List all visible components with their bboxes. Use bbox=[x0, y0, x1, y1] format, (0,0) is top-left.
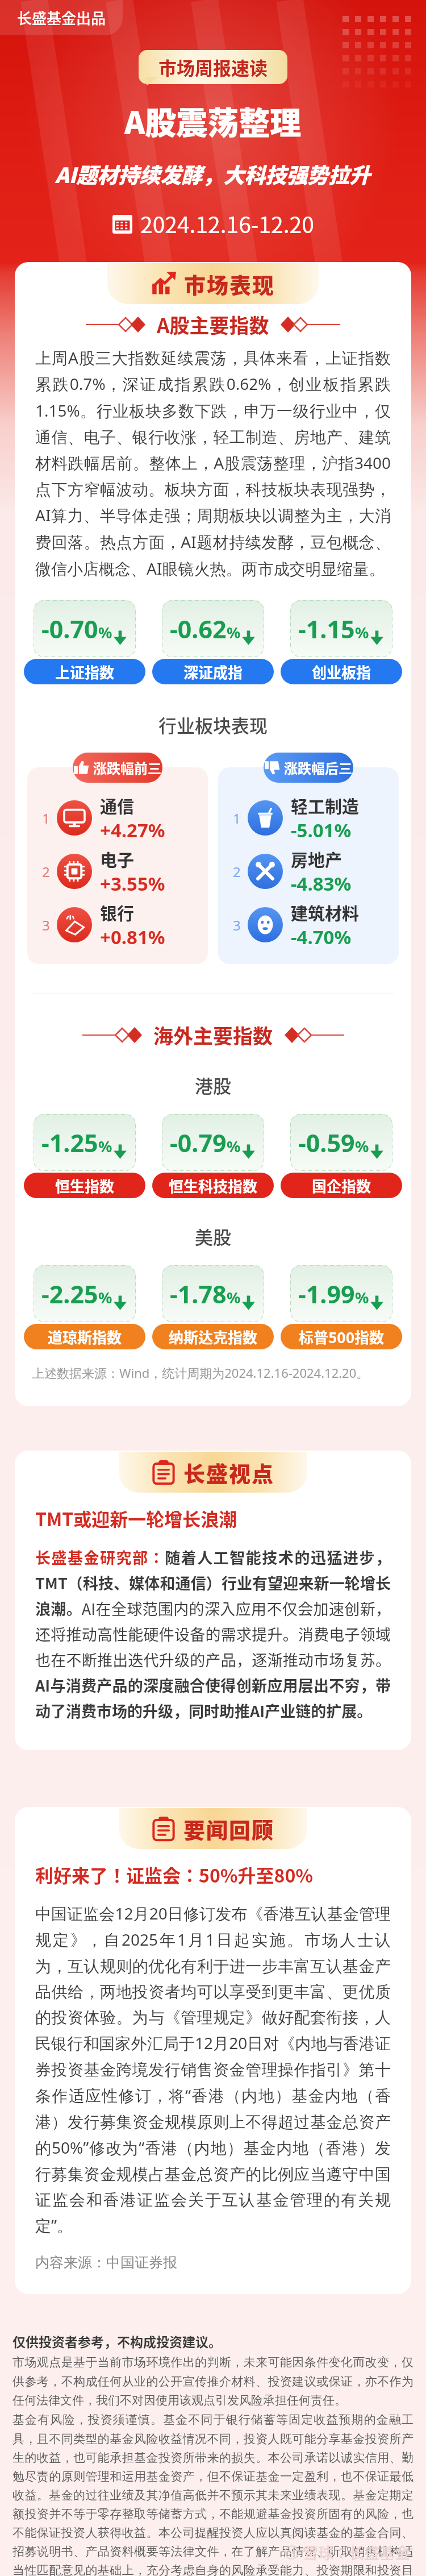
staticText: -1.99 bbox=[298, 1277, 355, 1311]
staticText: 国企指数 bbox=[312, 1175, 371, 1196]
staticText: -1.25 bbox=[41, 1126, 98, 1160]
staticText: -0.59 bbox=[298, 1126, 355, 1160]
staticText: +3.55% bbox=[100, 871, 165, 896]
staticText: 电子 bbox=[100, 846, 134, 871]
button[interactable]: -1.15 bbox=[281, 600, 402, 684]
staticText: +4.27% bbox=[100, 817, 165, 843]
button[interactable]: -0.70 bbox=[24, 600, 145, 684]
staticText: 港股 bbox=[195, 1072, 232, 1098]
staticText: 仅供投资者参考，不构成投资建议。 bbox=[12, 2332, 222, 2350]
staticText: 上证指数 bbox=[55, 661, 115, 683]
staticText: % bbox=[98, 1287, 112, 1308]
staticText: 基金有风险，投资须谨慎。基金不同于银行储蓄等固定收益预期的金融工具，且不同类型的… bbox=[12, 2412, 414, 2576]
staticText: 长盛基金研究部：随着人工智能技术的迅猛进步，TMT（科技、媒体和通信）行业有望迎… bbox=[35, 1546, 391, 1722]
button[interactable]: 涨跌幅前三 bbox=[73, 753, 162, 783]
staticText: 长盛视点 bbox=[183, 1457, 275, 1488]
staticText: % bbox=[227, 1136, 241, 1157]
staticText: A股震荡整理 bbox=[124, 98, 302, 143]
staticText: -1.15 bbox=[298, 612, 355, 646]
staticText: 行业板块表现 bbox=[158, 712, 268, 738]
staticText: -0.79 bbox=[170, 1126, 227, 1160]
button[interactable]: -1.25 bbox=[24, 1114, 145, 1198]
staticText: 海外主要指数 bbox=[153, 1020, 273, 1049]
staticText: 中国证监会12月20日修订发布《香港互认基金管理规定》，自2025年1月1日起实… bbox=[35, 1902, 391, 2237]
staticText: -0.62 bbox=[170, 612, 227, 646]
button[interactable]: 长盛基金出品 bbox=[0, 0, 123, 35]
staticText: % bbox=[98, 622, 112, 643]
staticText: 上周A股三大指数延续震荡，具体来看，上证指数累跌0.7%，深证成指累跌0.62%… bbox=[35, 347, 391, 580]
staticText: 深证成指 bbox=[183, 661, 243, 683]
staticText: -4.83% bbox=[291, 871, 352, 896]
button[interactable]: -1.78 bbox=[152, 1265, 274, 1349]
button[interactable]: -0.59 bbox=[281, 1114, 402, 1198]
staticText: 3 bbox=[233, 916, 241, 934]
staticText: +0.81% bbox=[100, 924, 165, 950]
staticText: 纳斯达克指数 bbox=[169, 1326, 258, 1348]
staticText: 建筑材料 bbox=[291, 900, 359, 924]
button[interactable]: 雪球 长盛基金 bbox=[285, 2541, 410, 2563]
button[interactable]: 长盛视点 bbox=[119, 1452, 307, 1493]
staticText: -4.70% bbox=[291, 924, 352, 950]
staticText: TMT或迎新一轮增长浪潮 bbox=[35, 1505, 237, 1531]
staticText: 市场表现 bbox=[184, 268, 275, 300]
button[interactable]: 市场表现 bbox=[107, 263, 319, 304]
staticText: 市场周报速读 bbox=[158, 54, 268, 80]
staticText: -2.25 bbox=[41, 1277, 98, 1311]
button[interactable]: -0.62 bbox=[152, 600, 274, 684]
button[interactable]: 要闻回顾 bbox=[119, 1808, 307, 1849]
staticText: 1 bbox=[42, 809, 50, 828]
staticText: 1 bbox=[233, 809, 241, 828]
button[interactable]: -2.25 bbox=[24, 1265, 145, 1349]
staticText: 道琼斯指数 bbox=[48, 1326, 122, 1348]
staticText: 长盛基金出品 bbox=[17, 7, 106, 28]
staticText: % bbox=[355, 1136, 369, 1157]
staticText: 雪球：长盛基金 bbox=[303, 2541, 410, 2563]
button[interactable]: -1.99 bbox=[281, 1265, 402, 1349]
staticText: 恒生科技指数 bbox=[169, 1175, 258, 1196]
staticText: 利好来了！证监会：50%升至80% bbox=[35, 1862, 314, 1888]
staticText: 要闻回顾 bbox=[183, 1813, 275, 1844]
staticText: 轻工制造 bbox=[291, 793, 359, 817]
staticText: 房地产 bbox=[291, 846, 342, 871]
staticText: 标普500指数 bbox=[299, 1326, 385, 1348]
staticText: 2024.12.16-12.20 bbox=[140, 207, 314, 239]
staticText: -0.70 bbox=[41, 612, 98, 646]
staticText: AI题材持续发酵，大科技强势拉升 bbox=[55, 159, 371, 189]
staticText: 2 bbox=[42, 862, 50, 881]
staticText: A股主要指数 bbox=[157, 310, 269, 339]
button[interactable]: 涨跌幅后三 bbox=[264, 753, 353, 783]
staticText: % bbox=[355, 622, 369, 643]
staticText: 创业板指 bbox=[312, 661, 371, 683]
staticText: -1.78 bbox=[170, 1277, 227, 1311]
staticText: 内容来源：中国证券报 bbox=[35, 2254, 177, 2271]
staticText: 上述数据来源：Wind，统计周期为2024.12.16-2024.12.20。 bbox=[32, 1364, 369, 1381]
staticText: % bbox=[227, 1287, 241, 1308]
staticText: % bbox=[227, 622, 241, 643]
staticText: 恒生指数 bbox=[55, 1175, 115, 1196]
staticText: 银行 bbox=[100, 900, 134, 924]
staticText: 涨跌幅前三 bbox=[93, 758, 161, 778]
staticText: 3 bbox=[42, 916, 50, 934]
staticText: 美股 bbox=[195, 1223, 232, 1249]
staticText: % bbox=[98, 1136, 112, 1157]
staticText: % bbox=[355, 1287, 369, 1308]
staticText: 通信 bbox=[100, 793, 134, 817]
staticText: 市场观点是基于当前市场环境作出的判断，未来可能因条件变化而改变，仅供参考，不构成… bbox=[12, 2355, 414, 2408]
staticText: 2 bbox=[233, 862, 241, 881]
button[interactable]: -0.79 bbox=[152, 1114, 274, 1198]
staticText: 涨跌幅后三 bbox=[284, 758, 352, 778]
staticText: -5.01% bbox=[291, 817, 352, 843]
